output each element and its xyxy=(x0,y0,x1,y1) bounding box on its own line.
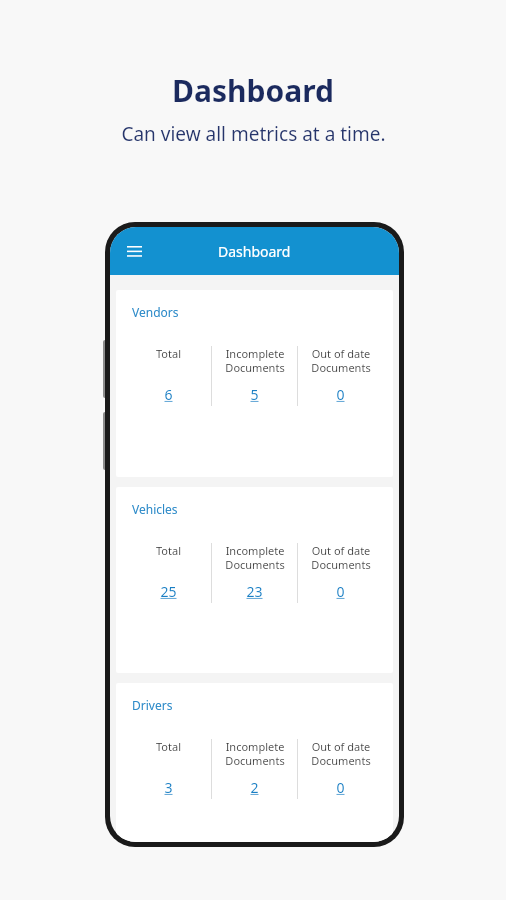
button[interactable]: Total xyxy=(126,543,211,601)
staticText: Total xyxy=(156,346,181,361)
staticText: 2 xyxy=(250,778,259,797)
button[interactable]: Incomplete Documents xyxy=(212,346,297,404)
staticText: Drivers xyxy=(132,697,173,713)
button[interactable]: Total xyxy=(126,346,211,404)
button[interactable]: Incomplete Documents xyxy=(212,543,297,601)
staticText: Out of date Documents xyxy=(311,543,371,572)
button[interactable]: Incomplete Documents xyxy=(212,739,297,797)
staticText: 0 xyxy=(336,385,345,404)
staticText: Vehicles xyxy=(132,501,178,517)
staticText: 0 xyxy=(336,582,345,601)
staticText: Can view all metrics at a time. xyxy=(121,121,386,147)
staticText: 5 xyxy=(250,385,259,404)
staticText: 0 xyxy=(336,778,345,797)
button[interactable]: Out of date Documents xyxy=(298,346,383,404)
staticText: 3 xyxy=(164,778,173,797)
staticText: Out of date Documents xyxy=(311,739,371,768)
button[interactable]: Out of date Documents xyxy=(298,739,383,797)
staticText: Incomplete Documents xyxy=(225,346,285,375)
button[interactable]: Vendors xyxy=(116,290,393,477)
staticText: Total xyxy=(156,543,181,558)
staticText: 25 xyxy=(160,582,177,601)
staticText: Total xyxy=(156,739,181,754)
button[interactable]: Open navigation menu xyxy=(116,233,152,269)
staticText: Dashboard xyxy=(172,70,334,111)
button[interactable]: Drivers xyxy=(116,683,393,842)
button[interactable]: Total xyxy=(126,739,211,797)
staticText: Incomplete Documents xyxy=(225,739,285,768)
staticText: Vendors xyxy=(132,304,179,320)
staticText: Incomplete Documents xyxy=(225,543,285,572)
button[interactable]: Vehicles xyxy=(116,487,393,673)
button[interactable]: Out of date Documents xyxy=(298,543,383,601)
staticText: Out of date Documents xyxy=(311,346,371,375)
staticText: 6 xyxy=(164,385,173,404)
staticText: Dashboard xyxy=(218,242,291,261)
staticText: 23 xyxy=(246,582,263,601)
